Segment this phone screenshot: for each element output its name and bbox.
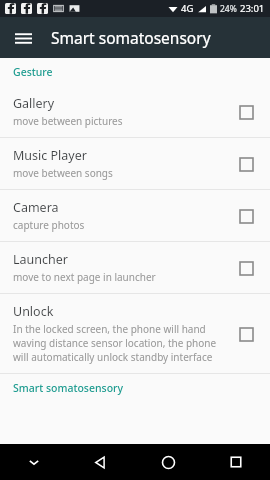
button[interactable]: Launcher: [0, 242, 270, 293]
button[interactable]: Hide keyboard: [0, 444, 67, 480]
staticText: In the locked screen, the phone will han…: [13, 322, 206, 336]
staticText: 4G: [181, 2, 194, 15]
staticText: Launcher: [13, 251, 68, 268]
staticText: move to next page in launcher: [13, 270, 156, 284]
button[interactable]: Unlock: [0, 294, 270, 373]
button[interactable]: Launcher toggle: [235, 257, 257, 279]
button[interactable]: Camera toggle: [235, 205, 257, 227]
staticText: Gesture: [13, 65, 53, 79]
button[interactable]: Back: [67, 444, 134, 480]
staticText: Unlock: [13, 303, 54, 320]
staticText: Gallery: [13, 95, 55, 112]
button[interactable]: Open navigation menu: [8, 23, 38, 53]
button[interactable]: Unlock toggle: [235, 323, 257, 345]
button[interactable]: Music Player toggle: [235, 153, 257, 175]
button[interactable]: Music Player: [0, 138, 270, 189]
staticText: Smart somatosensory: [13, 381, 124, 395]
staticText: 24%: [220, 3, 237, 15]
staticText: will automatically unlock standby interf…: [13, 350, 213, 364]
staticText: capture photos: [13, 218, 85, 232]
button[interactable]: Gallery toggle: [235, 101, 257, 123]
button[interactable]: Home: [134, 444, 202, 480]
button[interactable]: Gallery: [0, 86, 270, 137]
staticText: waving distance sensor location, the pho…: [13, 336, 217, 350]
button[interactable]: Camera: [0, 190, 270, 241]
staticText: Music Player: [13, 147, 87, 164]
staticText: move between pictures: [13, 114, 123, 128]
staticText: Smart somatosensory: [51, 27, 211, 48]
staticText: 23:01: [240, 2, 265, 15]
button[interactable]: Recent apps: [202, 444, 270, 480]
staticText: move between songs: [13, 166, 113, 180]
staticText: Camera: [13, 199, 59, 216]
